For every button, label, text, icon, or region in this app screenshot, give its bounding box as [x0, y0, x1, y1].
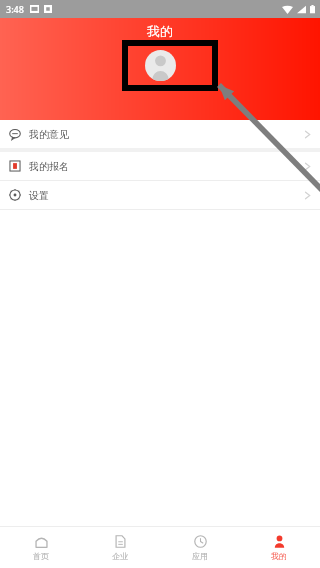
- staticText: 我的意见: [29, 128, 69, 141]
- staticText: 应用: [192, 551, 208, 561]
- staticText: 企业: [112, 551, 128, 561]
- button[interactable]: Profile avatar: [145, 50, 176, 81]
- button[interactable]: 设置: [0, 181, 320, 209]
- staticText: 3:48: [6, 3, 24, 15]
- staticText: 首页: [33, 551, 49, 561]
- staticText: 我的: [271, 551, 287, 561]
- staticText: 我的: [0, 23, 320, 39]
- button[interactable]: 应用: [162, 527, 238, 568]
- button[interactable]: 我的报名: [0, 152, 320, 180]
- staticText: 我的报名: [29, 160, 69, 173]
- button[interactable]: 企业: [82, 527, 158, 568]
- button[interactable]: 我的: [241, 527, 317, 568]
- staticText: 设置: [29, 189, 49, 202]
- button[interactable]: 我的意见: [0, 120, 320, 148]
- button[interactable]: 首页: [3, 527, 79, 568]
